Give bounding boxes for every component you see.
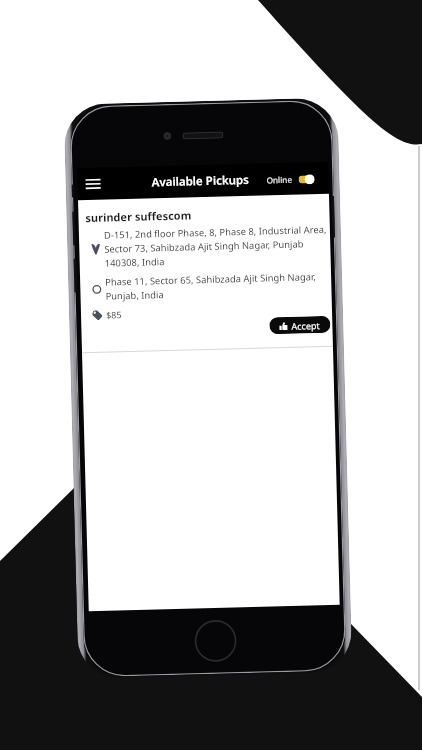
button[interactable]: Menu [81, 173, 104, 195]
staticText: Accept [291, 319, 320, 332]
staticText: surinder suffescom [85, 207, 192, 225]
button[interactable]: surinder suffescom [78, 194, 333, 352]
staticText: Phase 11, Sector 65, Sahibzada Ajit Sing… [105, 270, 317, 302]
button[interactable]: Accept [269, 316, 331, 334]
staticText: $85 [106, 308, 122, 321]
staticText: Online [266, 174, 293, 185]
staticText: Available Pickups [151, 172, 250, 190]
staticText: D-151, 2nd floor Phase, 8, Phase 8, Indu… [104, 223, 328, 269]
button[interactable]: Online toggle [298, 173, 315, 184]
